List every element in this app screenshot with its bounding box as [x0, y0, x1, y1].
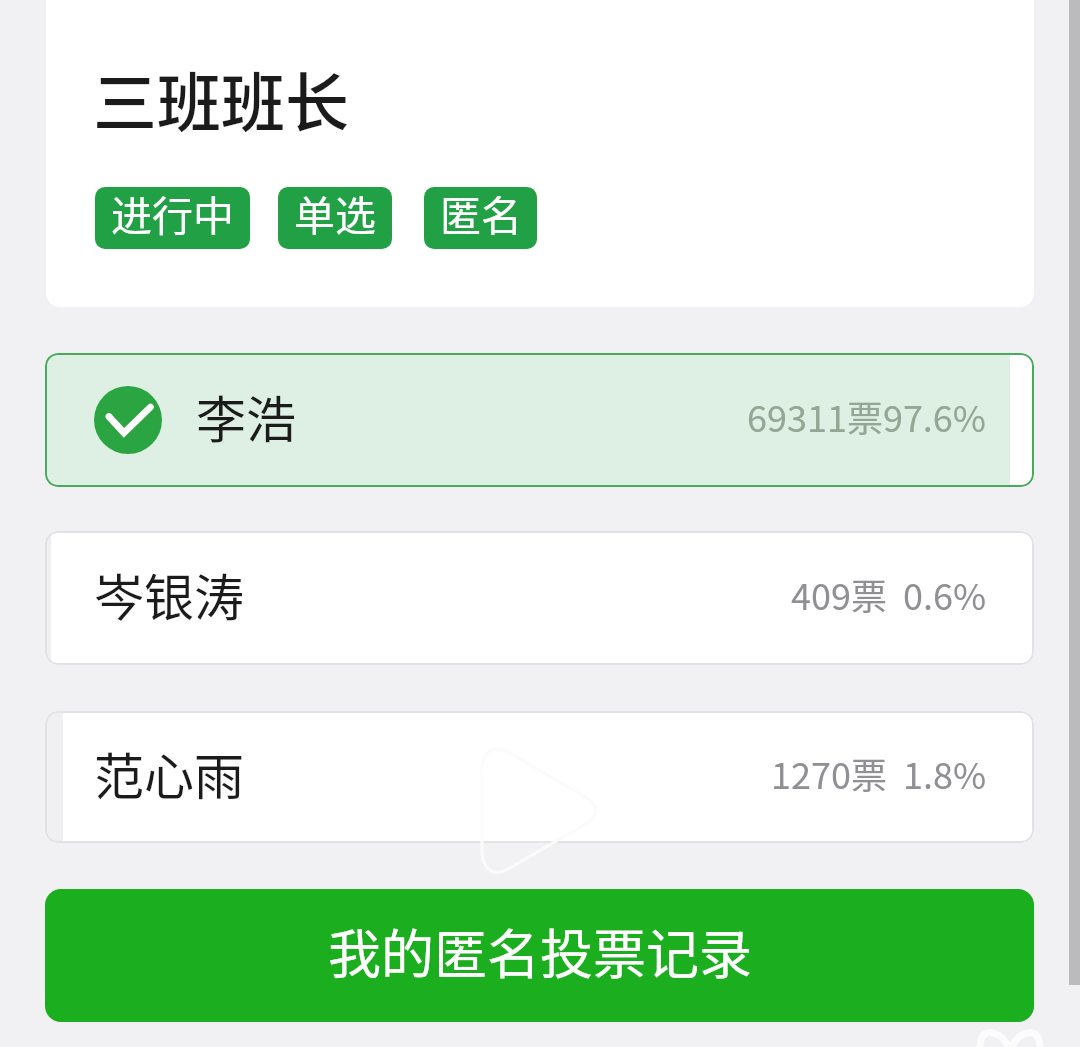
staticText: 李浩 [196, 380, 296, 452]
button[interactable]: 范心雨 [45, 711, 1034, 843]
button[interactable]: 我的匿名投票记录 [45, 889, 1034, 1022]
button[interactable]: 单选 [278, 187, 392, 249]
staticText: 进行中 [111, 187, 234, 242]
button[interactable]: 岑银涛 [45, 531, 1034, 665]
button[interactable]: 匿名 [424, 187, 537, 249]
staticText: 69311票97.6% [747, 390, 987, 442]
other: Like [971, 1029, 1049, 1047]
staticText: 匿名 [440, 187, 522, 242]
staticText: 1270票 1.8% [771, 747, 987, 799]
staticText: 409票 0.6% [791, 568, 987, 620]
button[interactable]: 进行中 [95, 187, 250, 249]
staticText: 我的匿名投票记录 [328, 913, 752, 990]
staticText: 三班班长 [93, 52, 349, 145]
staticText: 岑银涛 [94, 558, 244, 630]
button[interactable]: 李浩 [45, 353, 1034, 487]
staticText: 单选 [294, 187, 376, 242]
staticText: 范心雨 [94, 737, 244, 809]
